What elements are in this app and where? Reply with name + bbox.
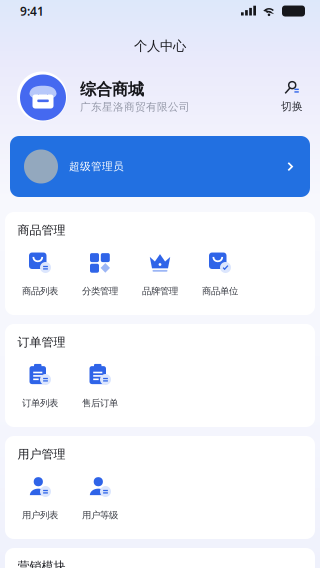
staticText: 个人中心 — [134, 38, 186, 54]
staticText: 商品管理 — [17, 223, 65, 238]
staticText: 用户列表 — [22, 509, 58, 521]
staticText: 综合商城 — [80, 80, 144, 99]
staticText: 分类管理 — [82, 285, 118, 297]
staticText: 营销模块 — [17, 559, 65, 568]
button[interactable]: 商品列表 — [10, 251, 70, 297]
staticText: 广东星洛商贸有限公司 — [80, 100, 190, 113]
staticText: 订单列表 — [22, 397, 58, 409]
staticText: 切换 — [281, 100, 303, 113]
staticText: 用户等级 — [82, 509, 118, 521]
button[interactable]: 订单列表 — [10, 363, 70, 409]
staticText: 商品列表 — [22, 285, 58, 297]
button[interactable]: 商品单位 — [190, 251, 250, 297]
button[interactable]: 品牌管理 — [130, 251, 190, 297]
button[interactable]: 超级管理员 — [0, 129, 320, 197]
staticText: 9:41 — [20, 3, 44, 19]
staticText: 超级管理员 — [69, 160, 124, 173]
button[interactable]: 用户列表 — [10, 475, 70, 521]
staticText: 订单管理 — [17, 335, 65, 350]
button[interactable]: 用户等级 — [70, 475, 130, 521]
button[interactable]: 售后订单 — [70, 363, 130, 409]
staticText: 品牌管理 — [142, 285, 178, 297]
staticText: 用户管理 — [17, 447, 65, 462]
staticText: 商品单位 — [202, 285, 238, 297]
button[interactable]: 切换 — [281, 80, 320, 113]
staticText: 售后订单 — [82, 397, 118, 409]
button[interactable]: 分类管理 — [70, 251, 130, 297]
